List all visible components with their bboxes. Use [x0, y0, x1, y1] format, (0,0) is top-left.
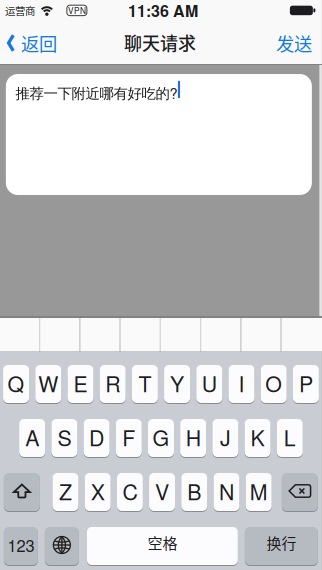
staticText: 空格 [147, 532, 177, 553]
button[interactable]: S [51, 419, 77, 458]
button[interactable]: B [181, 473, 207, 512]
button[interactable]: N [213, 473, 239, 512]
staticText: N [219, 476, 234, 506]
staticText: Z [59, 476, 72, 506]
button[interactable]: P [293, 365, 319, 404]
staticText: K [251, 422, 265, 452]
staticText: 11:36 AM [128, 0, 198, 22]
staticText: C [122, 476, 137, 506]
button[interactable]: A [19, 419, 45, 458]
staticText: I [238, 368, 244, 398]
staticText: VPN [68, 4, 86, 16]
staticText: Q [8, 368, 25, 398]
staticText: J [220, 422, 231, 452]
staticText: T [138, 368, 151, 398]
button[interactable]: V [149, 473, 175, 512]
button[interactable]: 下一个键盘 [45, 527, 79, 566]
button[interactable]: 候选词 [282, 318, 322, 351]
staticText: M [250, 476, 268, 506]
staticText: 换行 [266, 532, 296, 553]
button[interactable]: Shift [4, 473, 40, 512]
staticText: X [91, 476, 105, 506]
button[interactable]: K [245, 419, 271, 458]
button[interactable]: I [228, 365, 254, 404]
staticText: R [105, 368, 120, 398]
staticText: G [152, 422, 169, 452]
button[interactable]: 候选词 [0, 318, 39, 351]
button[interactable]: 发送 [272, 26, 322, 60]
staticText: 返回 [21, 30, 57, 56]
button[interactable]: O [261, 365, 287, 404]
button[interactable]: Z [52, 473, 78, 512]
staticText: L [284, 422, 296, 452]
button[interactable]: 候选词 [201, 318, 240, 351]
staticText: V [155, 476, 169, 506]
staticText: 推荐一下附近哪有好吃的? [15, 82, 177, 103]
button[interactable]: 候选词 [80, 318, 120, 351]
staticText: E [73, 368, 87, 398]
staticText: D [89, 422, 104, 452]
button[interactable]: 换行 [245, 527, 318, 566]
button[interactable]: U [196, 365, 222, 404]
staticText: 运营商 [5, 3, 35, 18]
button[interactable]: L [277, 419, 303, 458]
button[interactable]: Y [164, 365, 190, 404]
staticText: S [57, 422, 71, 452]
button[interactable]: Q [3, 365, 29, 404]
staticText: O [265, 368, 282, 398]
button[interactable]: T [132, 365, 158, 404]
staticText: F [122, 422, 135, 452]
staticText: W [38, 368, 58, 398]
staticText: B [187, 476, 201, 506]
button[interactable]: W [35, 365, 61, 404]
button[interactable]: F [116, 419, 142, 458]
button[interactable]: 候选词 [241, 318, 281, 351]
staticText: Y [170, 368, 184, 398]
button[interactable]: H [180, 419, 206, 458]
staticText: P [299, 368, 313, 398]
button[interactable]: J [212, 419, 238, 458]
button[interactable]: C [117, 473, 143, 512]
button[interactable]: 候选词 [121, 318, 160, 351]
staticText: A [25, 422, 39, 452]
button[interactable]: G [148, 419, 174, 458]
staticText: 发送 [276, 30, 312, 56]
button[interactable]: X [85, 473, 111, 512]
button[interactable]: E [67, 365, 93, 404]
button[interactable]: 候选词 [161, 318, 200, 351]
button[interactable]: 候选词 [40, 318, 79, 351]
button[interactable]: 返回 [0, 26, 61, 60]
button[interactable]: 123 [4, 527, 38, 566]
button[interactable]: R [100, 365, 126, 404]
staticText: 123 [7, 533, 34, 557]
button[interactable]: Delete [282, 473, 318, 512]
button[interactable]: D [84, 419, 110, 458]
button[interactable]: M [246, 473, 272, 512]
button[interactable]: 空格 [87, 527, 238, 566]
staticText: 聊天请求 [124, 29, 196, 56]
staticText: H [186, 422, 201, 452]
staticText: U [202, 368, 217, 398]
